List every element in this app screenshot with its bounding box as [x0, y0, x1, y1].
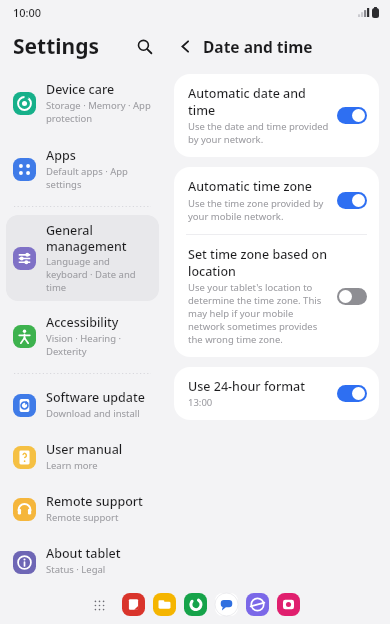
button[interactable]: Software update	[6, 382, 159, 427]
button[interactable]: On	[337, 192, 367, 209]
button[interactable]: Apps	[6, 140, 159, 198]
button[interactable]: Search	[128, 30, 160, 62]
button[interactable]: Automatic time zone	[174, 167, 379, 234]
button[interactable]: Messages	[215, 593, 238, 616]
button[interactable]: Camera	[277, 593, 300, 616]
button[interactable]: Use 24-hour format	[174, 367, 379, 420]
staticText: Learn more	[46, 459, 98, 472]
staticText: Status · Legal information · Tablet name	[46, 563, 151, 578]
button[interactable]: On	[337, 385, 367, 402]
staticText: Automatic date and time	[188, 85, 329, 118]
button[interactable]: User manual	[6, 434, 159, 479]
staticText: Use 24-hour format	[188, 378, 306, 395]
staticText: Storage · Memory · App protection	[46, 99, 151, 125]
staticText: Default apps · App settings	[46, 165, 151, 191]
button[interactable]: About tablet	[6, 538, 159, 585]
staticText: Automatic time zone	[188, 178, 313, 195]
button[interactable]: All apps	[87, 593, 111, 617]
button[interactable]: Device care	[6, 74, 159, 132]
staticText: Settings	[13, 32, 100, 61]
staticText: Apps	[46, 147, 76, 164]
button[interactable]: Phone	[184, 593, 207, 616]
staticText: Use your tablet's location to determine …	[188, 281, 329, 346]
button[interactable]: My Files	[153, 593, 176, 616]
button[interactable]: Off	[337, 288, 367, 305]
button[interactable]: Set time zone based on location	[174, 235, 379, 357]
staticText: Device care	[46, 81, 115, 98]
staticText: Use the date and time provided by your n…	[188, 120, 329, 146]
button[interactable]: Accessibility	[6, 307, 159, 365]
staticText: 13:00	[188, 396, 213, 409]
staticText: Language and keyboard · Date and time	[46, 255, 151, 294]
staticText: Accessibility	[46, 314, 119, 331]
staticText: User manual	[46, 441, 123, 458]
staticText: Download and install	[46, 407, 140, 420]
staticText: 10:00	[13, 5, 42, 20]
button[interactable]: Remote support	[6, 486, 159, 531]
button[interactable]: General management	[6, 215, 159, 301]
staticText: General management	[46, 222, 151, 254]
staticText: Vision · Hearing · Dexterity	[46, 332, 151, 358]
button[interactable]: Internet	[246, 593, 269, 616]
staticText: Use the time zone provided by your mobil…	[188, 197, 329, 223]
staticText: Set time zone based on location	[188, 246, 329, 279]
staticText: Remote support	[46, 511, 119, 524]
button[interactable]: Notes	[122, 593, 145, 616]
staticText: Date and time	[203, 36, 313, 57]
button[interactable]: Back	[172, 33, 198, 59]
button[interactable]: Automatic date and time	[174, 74, 379, 157]
button[interactable]: On	[337, 107, 367, 124]
staticText: Software update	[46, 389, 145, 406]
staticText: Remote support	[46, 493, 143, 510]
staticText: About tablet	[46, 545, 121, 562]
